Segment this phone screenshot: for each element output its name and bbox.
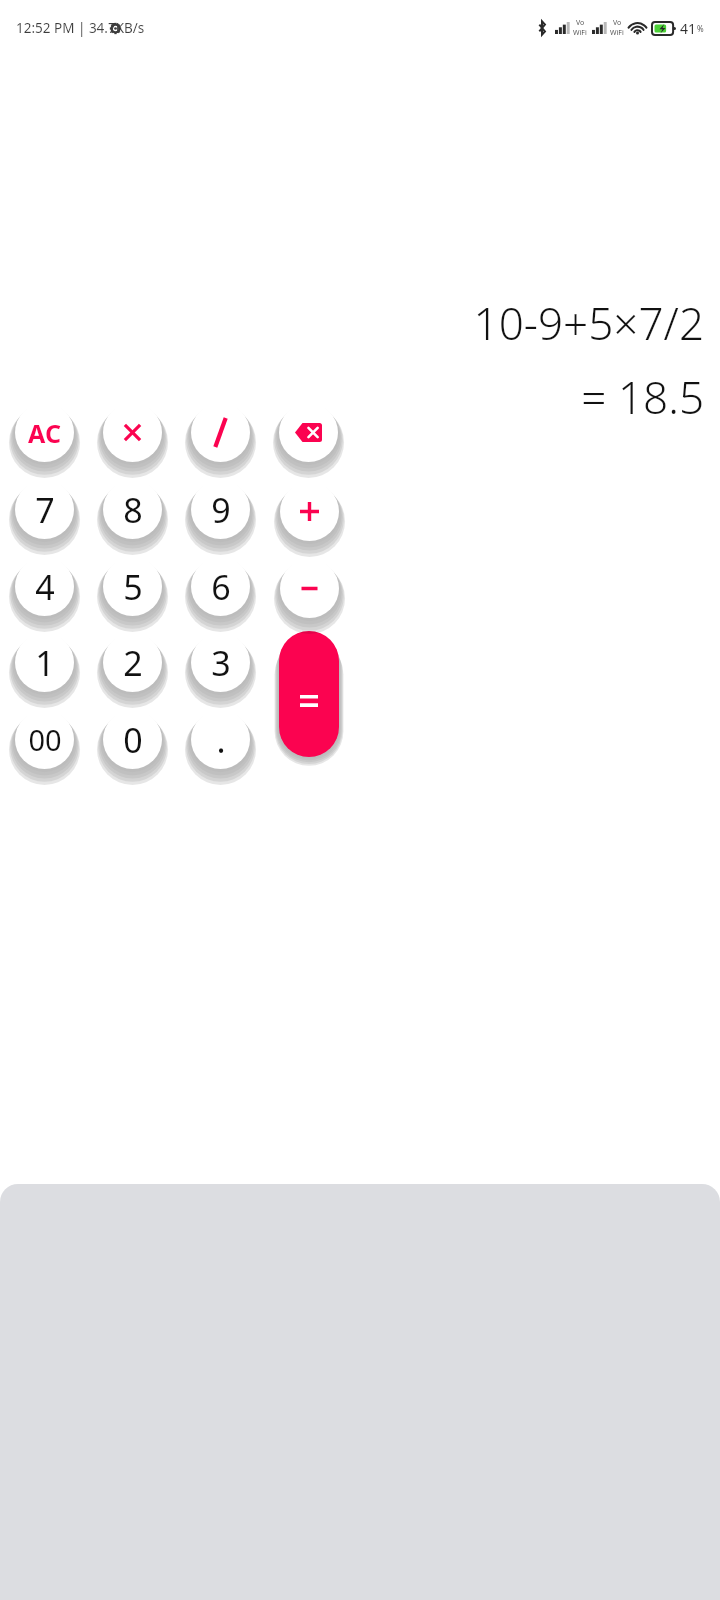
button[interactable]: Multiply [103, 403, 162, 462]
staticText: % [697, 23, 704, 34]
button[interactable]: Minus [280, 559, 339, 618]
staticText: = 18.5 [581, 367, 704, 427]
button[interactable]: Divide [191, 403, 250, 462]
button[interactable]: 4 [15, 557, 74, 616]
staticText: 2 [123, 640, 143, 686]
staticText: Vo [576, 18, 585, 28]
staticText: 4 [35, 564, 55, 610]
button[interactable]: 00 [15, 710, 74, 769]
staticText: 7 [35, 487, 55, 533]
button[interactable]: 5 [103, 557, 162, 616]
button[interactable]: Equals [279, 631, 339, 757]
button[interactable]: 0 [103, 710, 162, 769]
staticText: 6 [211, 564, 231, 610]
staticText: 41 [680, 19, 697, 38]
staticText: 8 [123, 487, 143, 533]
staticText: WiFi [573, 28, 587, 38]
staticText: . [216, 717, 226, 763]
staticText: 0 [123, 717, 143, 763]
staticText: WiFi [610, 28, 624, 38]
button[interactable]: 1 [15, 633, 74, 692]
button[interactable]: 8 [103, 480, 162, 539]
staticText: 10-9+5×7/2 [473, 293, 704, 353]
staticText: 9 [211, 487, 231, 533]
button[interactable]: 2 [103, 633, 162, 692]
staticText: 00 [28, 720, 62, 759]
button[interactable]: AC [15, 403, 74, 462]
button[interactable]: 3 [191, 633, 250, 692]
button[interactable]: Backspace [279, 403, 338, 462]
button[interactable]: 6 [191, 557, 250, 616]
staticText: Vo [613, 18, 622, 28]
staticText: 3 [211, 640, 231, 686]
staticText: 5 [123, 564, 143, 610]
button[interactable]: 9 [191, 480, 250, 539]
button[interactable]: 7 [15, 480, 74, 539]
staticText: 12:52 PM | 34.7KB/s [16, 19, 145, 37]
button[interactable]: Plus [280, 482, 339, 541]
button[interactable]: . [191, 710, 250, 769]
staticText: AC [28, 416, 61, 450]
staticText: 1 [35, 640, 55, 686]
